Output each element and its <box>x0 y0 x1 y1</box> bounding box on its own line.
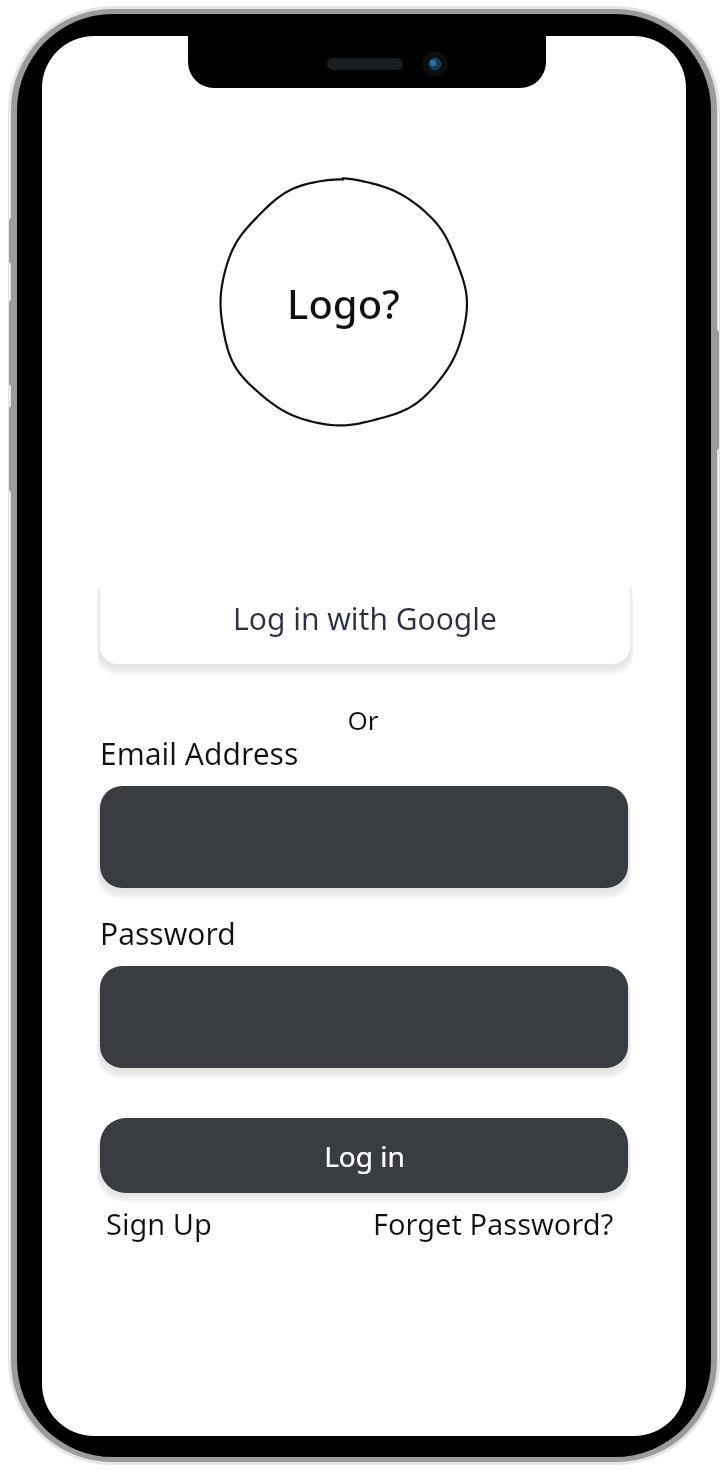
staticText: Email Address <box>100 733 299 774</box>
button[interactable]: Forget Password? <box>373 1204 614 1243</box>
button[interactable]: Email Address input <box>100 786 628 888</box>
button[interactable]: Log in with Google <box>100 572 630 664</box>
button[interactable]: Password input <box>100 966 628 1068</box>
button[interactable]: Sign Up <box>106 1204 212 1243</box>
staticText: Forget Password? <box>373 1204 614 1243</box>
staticText: Or <box>347 702 379 737</box>
staticText: Password <box>100 913 236 954</box>
staticText: Log in with Google <box>233 598 497 639</box>
button[interactable]: Log in <box>100 1118 628 1193</box>
staticText: Sign Up <box>106 1204 212 1243</box>
staticText: Logo? <box>287 276 400 330</box>
staticText: Log in <box>324 1137 405 1175</box>
